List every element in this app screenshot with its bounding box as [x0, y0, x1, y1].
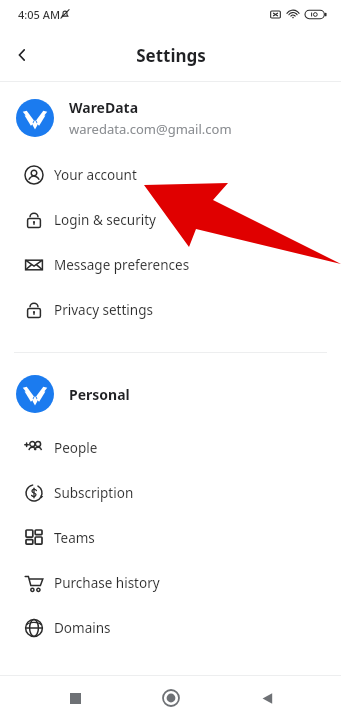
staticText: Your account: [54, 166, 137, 184]
staticText: Privacy settings: [54, 301, 153, 319]
button[interactable]: Teams: [0, 515, 341, 560]
button[interactable]: Purchase history: [0, 560, 341, 605]
staticText: Purchase history: [54, 574, 160, 592]
button[interactable]: WareData: [0, 96, 341, 140]
staticText: Login & security: [54, 211, 156, 229]
staticText: Settings: [136, 44, 206, 67]
staticText: WareData: [69, 98, 139, 117]
button[interactable]: Subscription: [0, 470, 341, 515]
staticText: Domains: [54, 619, 111, 637]
button[interactable]: Message preferences: [0, 242, 341, 287]
staticText: Message preferences: [54, 256, 190, 274]
staticText: 4:05 AM: [18, 7, 61, 22]
staticText: Personal: [69, 385, 130, 404]
button[interactable]: Domains: [0, 605, 341, 650]
staticText: Subscription: [54, 484, 134, 502]
button[interactable]: Privacy settings: [0, 287, 341, 332]
staticText: waredata.com@gmail.com: [69, 120, 232, 138]
button[interactable]: Back: [0, 33, 44, 77]
button[interactable]: Recents: [53, 676, 97, 720]
button[interactable]: People: [0, 425, 341, 470]
button[interactable]: Login & security: [0, 197, 341, 242]
button[interactable]: Home: [149, 676, 193, 720]
staticText: People: [54, 439, 98, 457]
button[interactable]: Back: [245, 676, 289, 720]
staticText: Teams: [54, 529, 95, 547]
button[interactable]: Your account: [0, 152, 341, 197]
button[interactable]: Personal: [0, 373, 341, 415]
